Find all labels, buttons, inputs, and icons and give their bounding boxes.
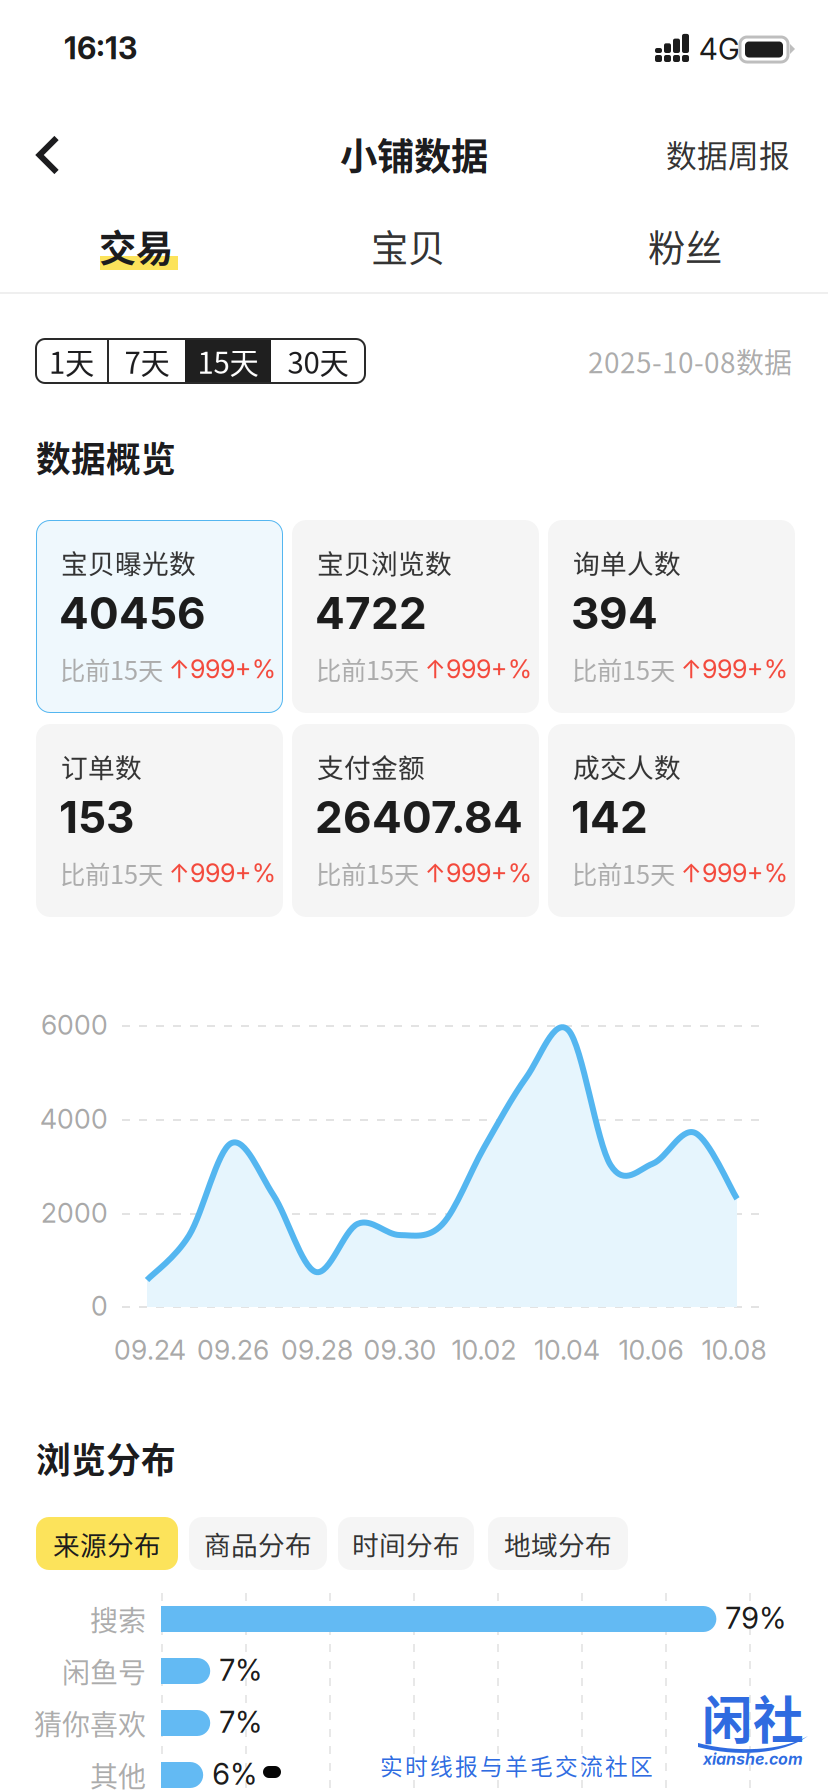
button[interactable]: 数据周报 bbox=[644, 118, 812, 190]
staticText: 394 bbox=[571, 586, 658, 640]
staticText: 6% bbox=[212, 1756, 257, 1792]
button[interactable]: 地域分布 bbox=[488, 1517, 628, 1570]
staticText: 153 bbox=[59, 790, 134, 844]
staticText: 2025-10-08数据 bbox=[588, 341, 792, 381]
button[interactable]: 宝贝曝光数 bbox=[36, 520, 283, 713]
staticText: 4722 bbox=[315, 586, 427, 640]
staticText: 成交人数 bbox=[573, 747, 681, 785]
staticText: 26407.84 bbox=[315, 790, 523, 844]
staticText: ↑999+% bbox=[681, 654, 788, 684]
staticText: 比前15天 bbox=[572, 651, 675, 687]
staticText: 10.04 bbox=[534, 1334, 600, 1366]
button[interactable]: 7天 bbox=[109, 339, 185, 383]
staticText: 闲社 bbox=[702, 1680, 804, 1754]
staticText: 7% bbox=[219, 1704, 262, 1740]
staticText: ↑999+% bbox=[169, 858, 276, 888]
staticText: 15天 bbox=[197, 340, 258, 382]
staticText: 商品分布 bbox=[204, 1524, 312, 1563]
staticText: 宝贝曝光数 bbox=[61, 543, 196, 581]
staticText: 10.08 bbox=[701, 1334, 766, 1366]
staticText: 7天 bbox=[124, 340, 169, 382]
staticText: 比前15天 bbox=[316, 855, 419, 891]
button[interactable]: 宝贝 bbox=[321, 206, 495, 286]
staticText: 10.02 bbox=[451, 1334, 516, 1366]
staticText: 粉丝 bbox=[648, 219, 722, 273]
staticText: 16:13 bbox=[64, 29, 137, 66]
staticText: 1天 bbox=[49, 340, 94, 382]
staticText: 30天 bbox=[287, 340, 348, 382]
staticText: 闲鱼号 bbox=[62, 1651, 146, 1691]
staticText: 浏览分布 bbox=[36, 1433, 176, 1483]
staticText: 09.28 bbox=[281, 1334, 353, 1366]
staticText: 时间分布 bbox=[352, 1524, 460, 1563]
staticText: 来源分布 bbox=[53, 1524, 161, 1563]
staticText: 数据周报 bbox=[666, 132, 790, 176]
button[interactable]: 订单数 bbox=[36, 724, 283, 917]
staticText: 10.06 bbox=[618, 1334, 683, 1366]
staticText: 比前15天 bbox=[60, 855, 163, 891]
staticText: ↑999+% bbox=[425, 654, 532, 684]
staticText: 4000 bbox=[40, 1103, 108, 1135]
staticText: 交易 bbox=[99, 219, 173, 273]
button[interactable]: 15天 bbox=[185, 339, 271, 383]
staticText: 7% bbox=[219, 1652, 262, 1688]
staticText: 2000 bbox=[41, 1197, 108, 1229]
button[interactable]: 交易 bbox=[49, 206, 223, 286]
button[interactable]: 商品分布 bbox=[189, 1517, 327, 1570]
staticText: 79% bbox=[725, 1600, 786, 1636]
button[interactable]: 粉丝 bbox=[598, 206, 772, 286]
staticText: 09.30 bbox=[363, 1334, 436, 1366]
staticText: 0 bbox=[91, 1290, 108, 1322]
staticText: ↑999+% bbox=[425, 858, 532, 888]
staticText: 其他 bbox=[90, 1755, 146, 1792]
staticText: xianshe.com bbox=[703, 1749, 803, 1769]
staticText: 宝贝浏览数 bbox=[317, 543, 452, 581]
button[interactable]: 时间分布 bbox=[338, 1517, 474, 1570]
staticText: 地域分布 bbox=[504, 1524, 612, 1563]
staticText: 比前15天 bbox=[316, 651, 419, 687]
button[interactable]: 支付金额 bbox=[292, 724, 539, 917]
staticText: 询单人数 bbox=[573, 543, 681, 581]
staticText: 40456 bbox=[59, 586, 206, 640]
staticText: ↑999+% bbox=[169, 654, 276, 684]
staticText: 4G bbox=[699, 31, 740, 67]
staticText: 09.26 bbox=[197, 1334, 269, 1366]
button[interactable]: 1天 bbox=[36, 339, 107, 383]
staticText: 6000 bbox=[41, 1009, 108, 1041]
button[interactable]: 来源分布 bbox=[36, 1517, 178, 1570]
button[interactable]: 询单人数 bbox=[548, 520, 795, 713]
staticText: 小铺数据 bbox=[340, 127, 488, 181]
staticText: 09.24 bbox=[114, 1334, 186, 1366]
staticText: 数据概览 bbox=[36, 432, 176, 482]
staticText: ↑999+% bbox=[681, 858, 788, 888]
staticText: 猜你喜欢 bbox=[34, 1703, 146, 1743]
staticText: 支付金额 bbox=[317, 747, 425, 785]
staticText: 比前15天 bbox=[572, 855, 675, 891]
staticText: 订单数 bbox=[61, 747, 142, 785]
button[interactable]: 返回 bbox=[4, 115, 92, 195]
button[interactable]: 成交人数 bbox=[548, 724, 795, 917]
button[interactable]: 宝贝浏览数 bbox=[292, 520, 539, 713]
staticText: 实时线报与羊毛交流社区 bbox=[380, 1749, 653, 1781]
button[interactable]: 30天 bbox=[271, 339, 365, 383]
staticText: 宝贝 bbox=[371, 219, 445, 273]
staticText: 搜索 bbox=[90, 1599, 146, 1639]
staticText: 142 bbox=[571, 790, 648, 844]
staticText: 比前15天 bbox=[60, 651, 163, 687]
